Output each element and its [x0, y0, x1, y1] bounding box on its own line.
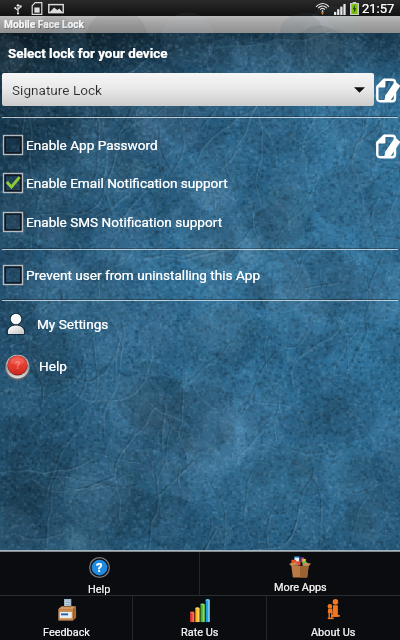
button[interactable]: ?	[0, 552, 199, 595]
button[interactable]: Prevent user from uninstalling this App	[0, 256, 400, 294]
button[interactable]: More Apps	[200, 552, 400, 595]
button[interactable]: Rate Us	[133, 596, 266, 640]
button[interactable]: ?	[0, 348, 400, 384]
staticText: ?	[96, 560, 103, 575]
staticText: More Apps	[274, 581, 327, 594]
staticText: About Us	[311, 626, 356, 639]
staticText: Mobile Face Lock	[5, 20, 86, 32]
button[interactable]: About Us	[267, 596, 400, 640]
staticText: Mobile Face Lock	[4, 19, 85, 31]
staticText: Enable Email Notification support	[26, 175, 228, 191]
staticText: My Settings	[37, 316, 109, 332]
staticText: Help	[39, 358, 67, 374]
staticText: Rate Us	[181, 626, 219, 639]
staticText: Feedback	[43, 626, 90, 639]
button[interactable]: Enable Email Notification support	[0, 164, 400, 202]
staticText: Select lock for your device	[8, 46, 168, 62]
staticText: Signature Lock	[12, 82, 102, 98]
button[interactable]: Enable App Password	[0, 126, 400, 164]
button[interactable]: Feedback	[0, 596, 132, 640]
button[interactable]: Signature Lock	[2, 73, 374, 106]
staticText: ?	[15, 359, 21, 372]
staticText: Enable App Password	[26, 137, 158, 153]
button[interactable]: Edit password	[375, 134, 398, 159]
button[interactable]: Enable SMS Notification support	[0, 203, 400, 241]
staticText: Prevent user from uninstalling this App	[26, 267, 261, 283]
button[interactable]: Edit lock	[375, 78, 398, 103]
staticText: Enable SMS Notification support	[26, 214, 223, 230]
button[interactable]: My Settings	[0, 306, 400, 342]
staticText: Help	[88, 583, 111, 595]
staticText: 21:57	[362, 1, 395, 16]
